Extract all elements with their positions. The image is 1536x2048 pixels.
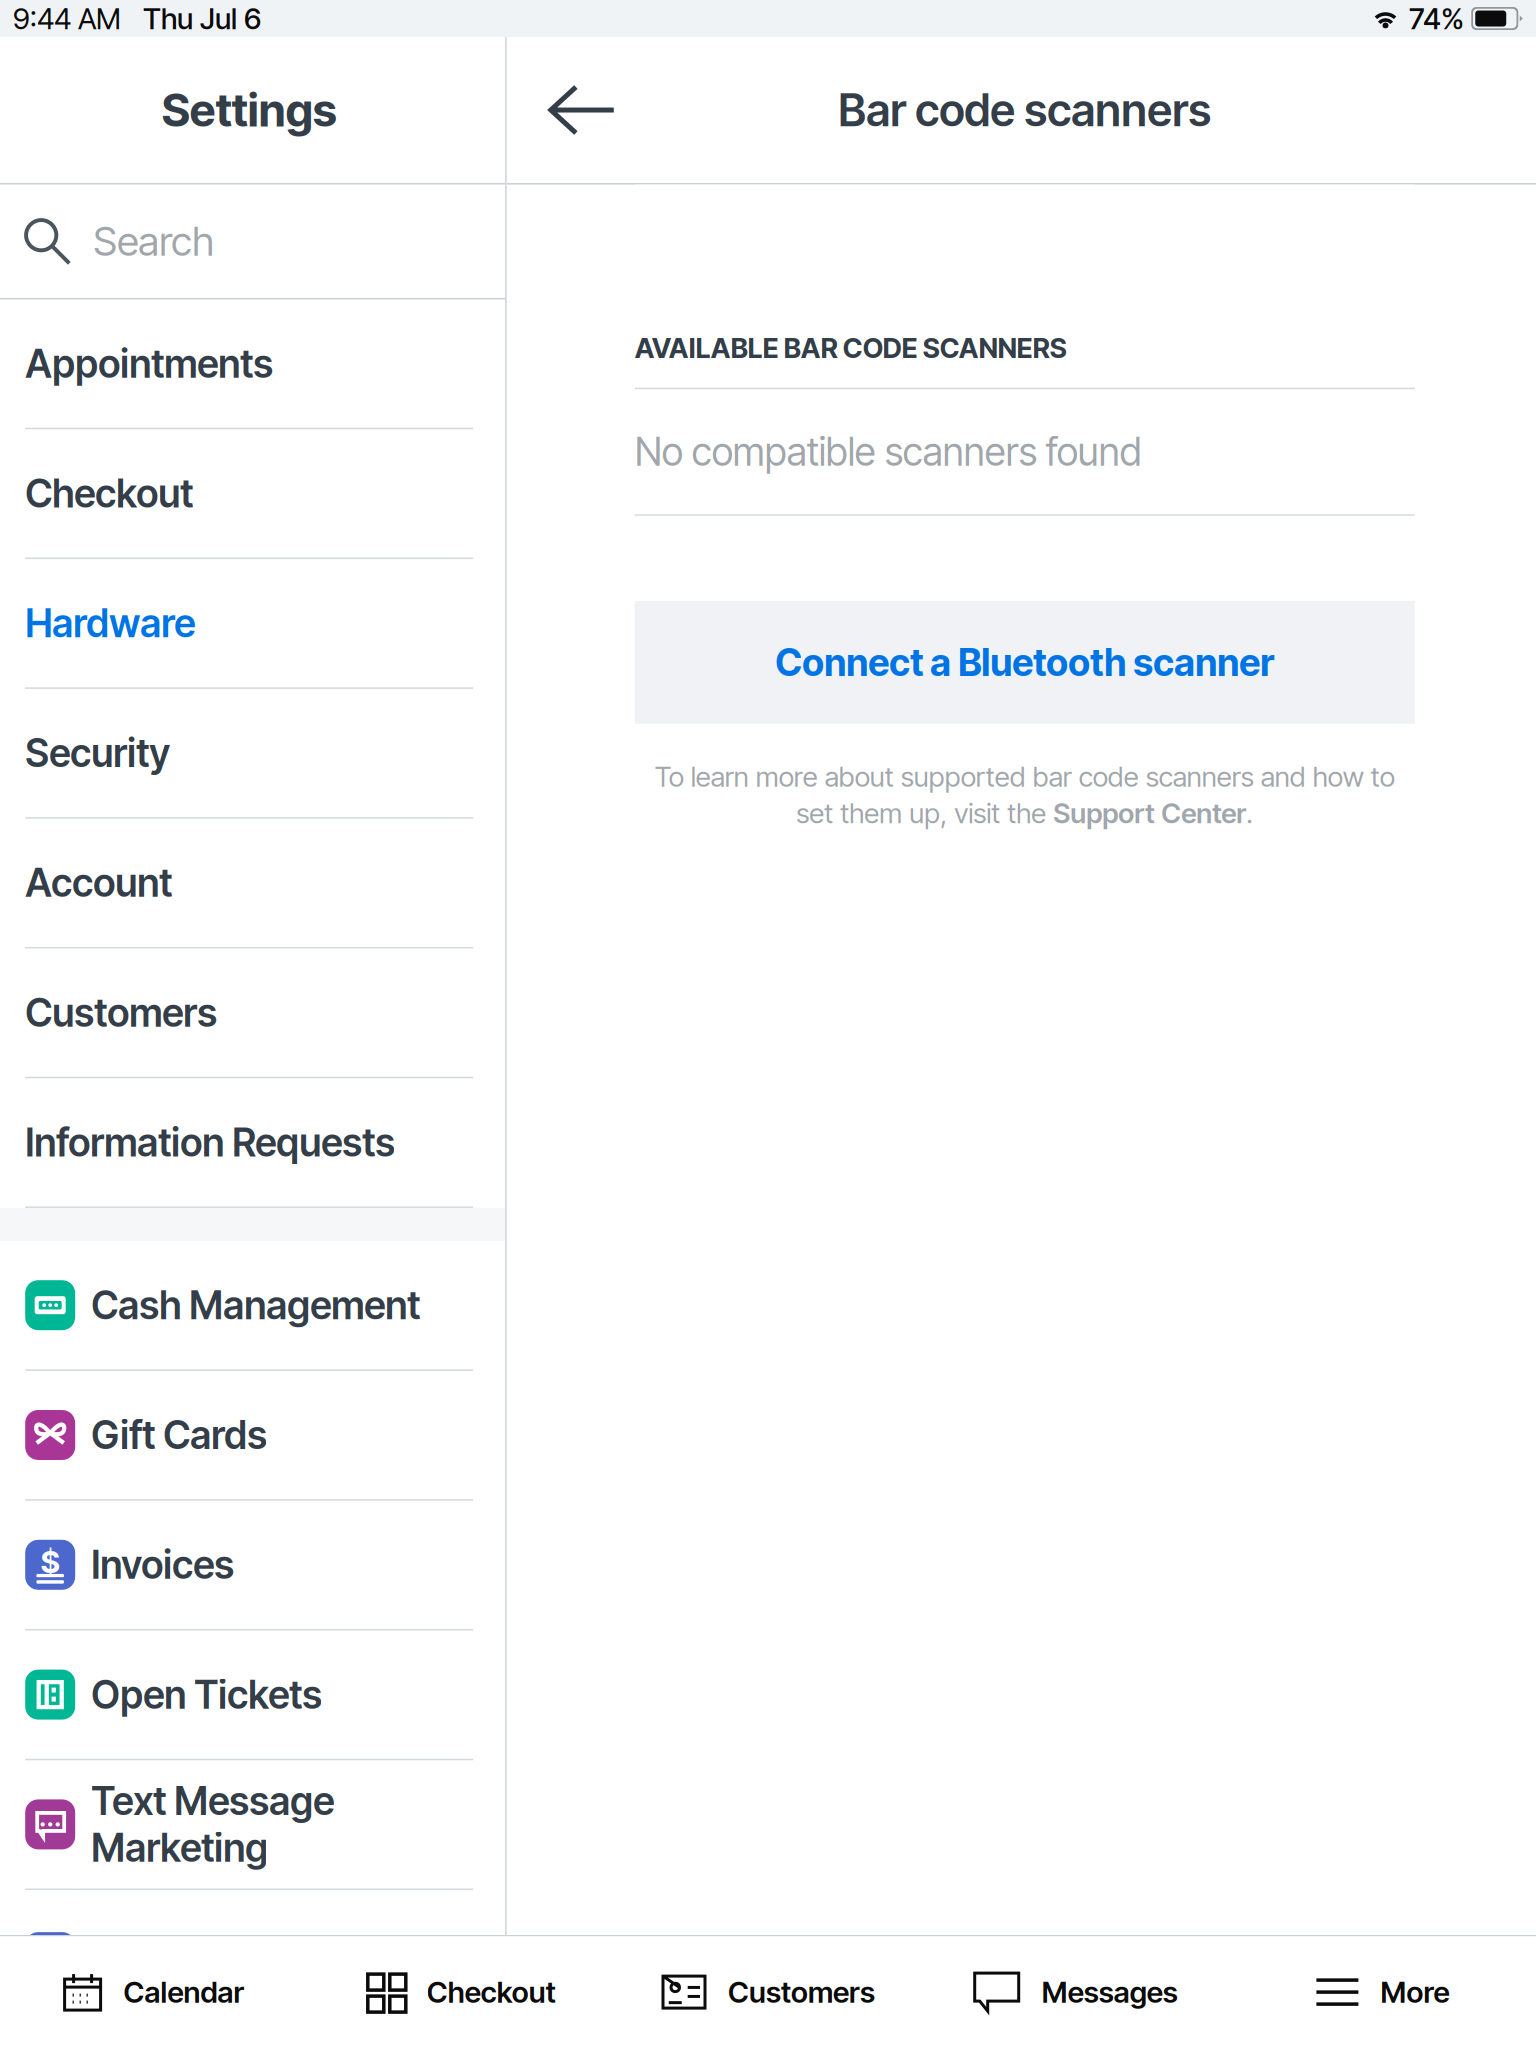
button[interactable]: Text Message Marketing <box>0 1760 505 1890</box>
staticText: More <box>1380 1974 1449 2010</box>
staticText: Open Tickets <box>91 1671 322 1718</box>
button[interactable]: Checkout <box>307 1936 614 2048</box>
staticText: $ <box>41 1543 60 1580</box>
button[interactable]: Customers <box>614 1936 922 2048</box>
staticText: Information Requests <box>25 1119 395 1166</box>
button[interactable]: Back <box>507 37 682 183</box>
staticText: Invoices <box>91 1541 234 1588</box>
staticText: Account <box>25 859 172 906</box>
staticText: Security <box>25 730 170 776</box>
staticText: set them up, visit the <box>796 796 1053 830</box>
button[interactable]: Appointments <box>0 299 505 429</box>
button[interactable]: Connect a Bluetooth scanner <box>635 601 1415 724</box>
staticText: Messages <box>1042 1974 1178 2010</box>
staticText: Settings <box>162 82 337 137</box>
button[interactable]: Account <box>0 819 505 948</box>
staticText: Customers <box>728 1974 875 2010</box>
staticText: . <box>1246 796 1253 830</box>
staticText: Gift Cards <box>91 1412 267 1458</box>
button[interactable]: Calendar <box>0 1936 307 2048</box>
button[interactable]: Messages <box>922 1936 1229 2048</box>
staticText: AVAILABLE BAR CODE SCANNERS <box>635 332 1067 365</box>
button[interactable]: Gift Cards <box>0 1371 505 1501</box>
staticText: Thu Jul 6 <box>143 1 261 36</box>
button[interactable]: More <box>1229 1936 1536 2048</box>
staticText: No compatible scanners found <box>635 428 1142 475</box>
staticText: Checkout <box>25 470 193 517</box>
staticText: 9:44 AM <box>13 1 121 36</box>
button[interactable]: Hardware <box>0 559 505 689</box>
staticText: Cash Management <box>91 1282 420 1329</box>
staticText: Calendar <box>124 1974 245 2010</box>
staticText: 74% <box>1409 1 1464 36</box>
staticText: To learn more about supported bar code s… <box>655 760 1395 793</box>
staticText: Appointments <box>25 340 273 387</box>
staticText: Bar code scanners <box>838 83 1211 137</box>
button[interactable]: Checkout <box>0 429 505 559</box>
staticText: Hardware <box>25 600 195 647</box>
button[interactable]: Customers <box>0 948 505 1078</box>
button[interactable]: Cash Management <box>0 1241 505 1371</box>
staticText: Customers <box>25 989 217 1036</box>
staticText: Text Message Marketing <box>91 1778 334 1871</box>
staticText: Connect a Bluetooth scanner <box>775 640 1274 685</box>
button[interactable]: Security <box>0 689 505 819</box>
staticText: Search <box>93 217 214 265</box>
button[interactable]: Open Tickets <box>0 1630 505 1760</box>
staticText: Checkout <box>427 1974 556 2010</box>
staticText: Support Center <box>1053 796 1246 830</box>
button[interactable]: $ <box>0 1501 505 1630</box>
button[interactable]: Information Requests <box>0 1078 505 1208</box>
